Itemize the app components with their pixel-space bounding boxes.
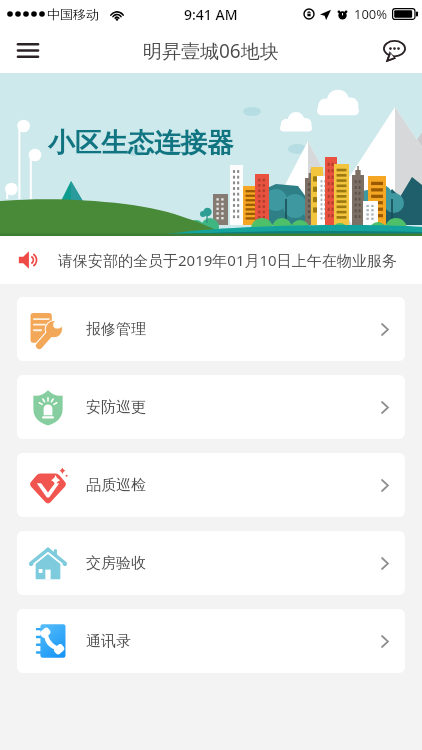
staticText: 100% — [354, 5, 388, 23]
button[interactable]: 通讯录 — [17, 609, 405, 673]
button[interactable]: Menu — [0, 28, 55, 73]
staticText: 小区生态连接器 — [48, 126, 234, 159]
staticText: 9:41 AM — [184, 5, 238, 24]
button[interactable]: Messages — [366, 28, 422, 73]
button[interactable]: 交房验收 — [17, 531, 405, 595]
button[interactable]: 请保安部的全员于2019年01月10日上午在物业服务 — [0, 236, 422, 284]
button[interactable]: 安防巡更 — [17, 375, 405, 439]
staticText: 明昇壹城06地块 — [143, 38, 279, 64]
button[interactable]: 报修管理 — [17, 297, 405, 361]
staticText: 中国移动 — [47, 6, 99, 22]
staticText: 品质巡检 — [86, 476, 146, 495]
staticText: 交房验收 — [86, 554, 146, 573]
staticText: 报修管理 — [86, 320, 146, 339]
staticText: 请保安部的全员于2019年01月10日上午在物业服务 — [58, 250, 397, 270]
staticText: 通讯录 — [86, 632, 131, 651]
staticText: 安防巡更 — [86, 398, 146, 417]
button[interactable]: 品质巡检 — [17, 453, 405, 517]
